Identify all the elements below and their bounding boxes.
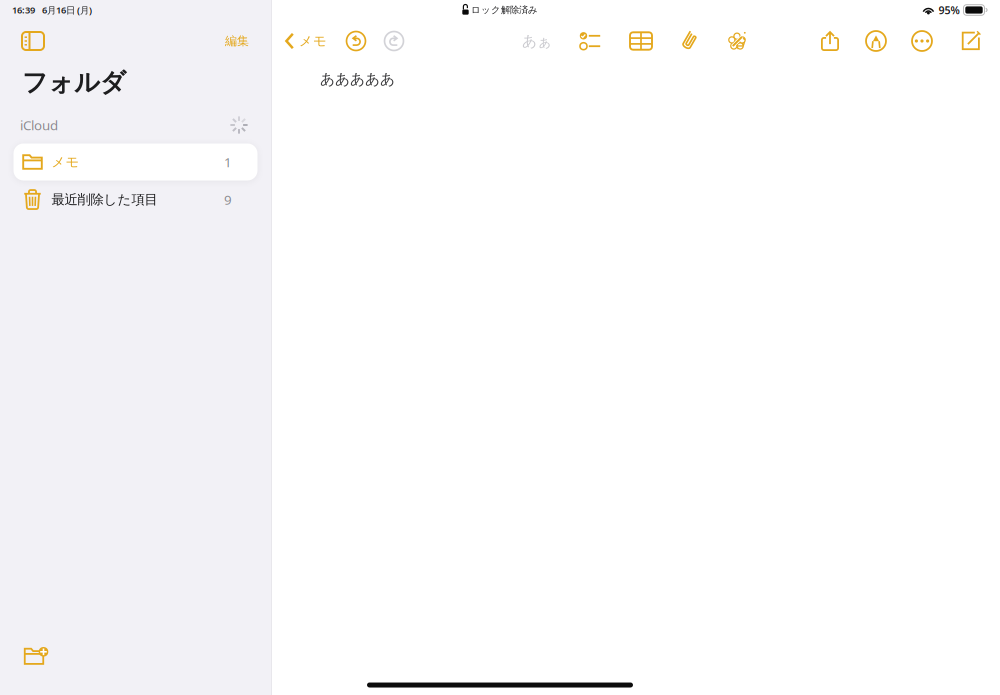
staticText: あああああ	[320, 70, 395, 88]
button[interactable]: Undo	[336, 21, 376, 61]
staticText: あぁ	[522, 32, 552, 50]
button[interactable]: メモ	[13, 143, 257, 180]
button[interactable]: More	[902, 21, 942, 61]
staticText: フォルダ	[22, 67, 126, 98]
button[interactable]: Markup	[717, 21, 757, 61]
button[interactable]: 最近削除した項目	[13, 181, 257, 218]
staticText: ロック解除済み	[471, 4, 538, 16]
button[interactable]: New Folder	[12, 636, 56, 676]
button[interactable]: 編集	[207, 21, 267, 61]
button[interactable]: Markup Drawing	[856, 21, 896, 61]
staticText: 95%	[938, 3, 959, 17]
staticText: 最近削除した項目	[51, 191, 157, 208]
staticText: 6月16日 (月)	[42, 4, 92, 16]
button[interactable]: Hide Sidebar	[11, 21, 55, 61]
staticText: 編集	[225, 34, 249, 48]
staticText: 16:39	[12, 4, 35, 16]
staticText: 1	[224, 153, 232, 171]
button[interactable]: Checklist	[569, 21, 609, 61]
staticText: メモ	[51, 154, 79, 170]
button[interactable]: メモ	[279, 21, 333, 61]
button[interactable]: Table	[621, 21, 661, 61]
button[interactable]: Attach	[669, 21, 709, 61]
staticText: iCloud	[20, 116, 58, 134]
staticText: メモ	[299, 33, 327, 49]
staticText: 9	[224, 191, 232, 208]
button[interactable]: Share	[810, 21, 850, 61]
button[interactable]: Format	[511, 21, 563, 61]
button[interactable]: New Note	[951, 21, 991, 61]
button[interactable]: Redo	[374, 21, 414, 61]
